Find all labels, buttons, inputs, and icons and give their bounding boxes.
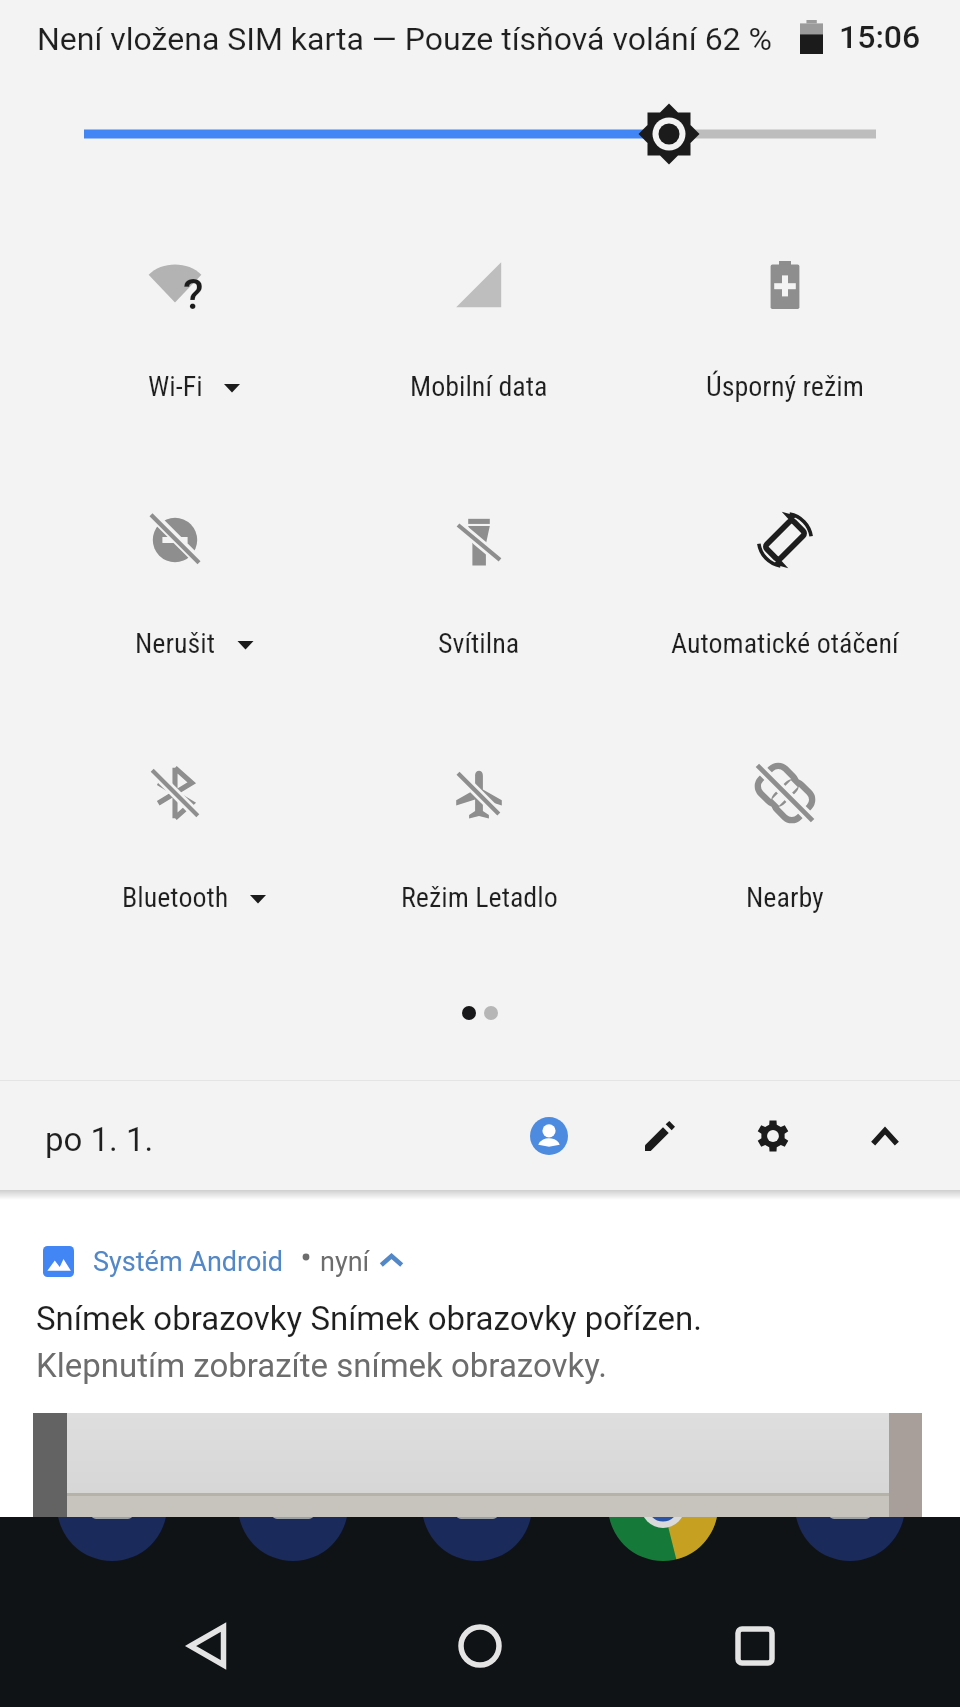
button[interactable]: Nearby — [633, 737, 937, 939]
button[interactable]: Režim Letadlo — [327, 737, 631, 939]
staticText: Bluetooth — [122, 881, 229, 914]
staticText: nyní — [320, 1246, 370, 1278]
staticText: 15:06 — [839, 18, 921, 56]
staticText: po 1. 1. — [45, 1120, 154, 1159]
staticText: Nearby — [746, 881, 824, 914]
button[interactable]: Edit — [618, 1094, 702, 1178]
button[interactable]: Systém Android — [0, 1200, 960, 1516]
button[interactable]: Collapse — [843, 1094, 927, 1178]
button[interactable]: Brightness — [0, 100, 960, 174]
button[interactable]: Mobilní data — [327, 229, 631, 428]
button[interactable]: Svítilna — [327, 484, 631, 685]
button[interactable]: Automatické otáčení — [633, 484, 937, 685]
staticText: Svítilna — [438, 627, 520, 660]
button[interactable]: Recents — [695, 1587, 815, 1707]
button[interactable]: Úsporný režim — [633, 229, 937, 428]
staticText: Klepnutím zobrazíte snímek obrazovky. — [36, 1346, 607, 1385]
button[interactable]: Back — [147, 1587, 267, 1707]
button[interactable]: Wi-Fi — [23, 229, 327, 428]
button[interactable]: Settings — [731, 1094, 815, 1178]
staticText: Wi-Fi — [148, 370, 203, 403]
staticText: Úsporný režim — [706, 370, 864, 403]
staticText: Automatické otáčení — [671, 627, 899, 660]
button[interactable]: User — [507, 1094, 591, 1178]
staticText: Není vložena SIM karta — Pouze tísňová v… — [37, 20, 772, 58]
staticText: ? — [183, 270, 204, 319]
staticText: Systém Android — [93, 1246, 284, 1278]
staticText: Nerušit — [135, 627, 216, 660]
staticText: Režim Letadlo — [401, 881, 558, 914]
staticText: Mobilní data — [410, 370, 548, 403]
button[interactable]: Home — [420, 1587, 540, 1707]
button[interactable]: Bluetooth — [23, 737, 327, 939]
staticText: Snímek obrazovky Snímek obrazovky poříze… — [36, 1299, 702, 1338]
button[interactable]: Nerušit — [23, 484, 327, 685]
